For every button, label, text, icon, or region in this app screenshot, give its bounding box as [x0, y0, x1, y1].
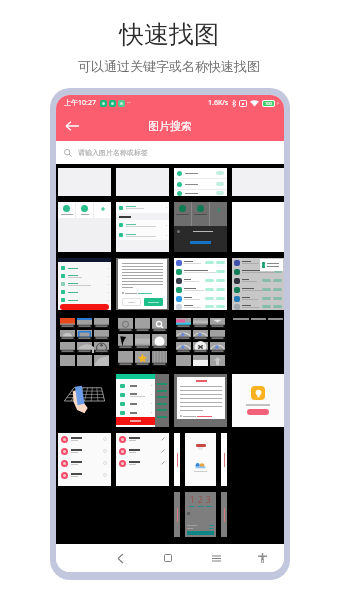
button[interactable] [116, 433, 169, 486]
staticText: 可以通过关键字或名称快速找图 [78, 58, 260, 74]
staticText: ·· [127, 98, 131, 108]
button[interactable]: Assistant [240, 544, 284, 572]
button[interactable] [232, 258, 284, 310]
button[interactable] [174, 258, 227, 310]
staticText: ⚡ [276, 100, 280, 106]
button[interactable] [174, 316, 227, 368]
staticText: 1.6K/s [208, 98, 229, 108]
button[interactable] [58, 374, 111, 427]
staticText: 2 [198, 494, 203, 505]
button[interactable] [58, 316, 111, 368]
button[interactable] [116, 316, 169, 368]
button[interactable] [232, 316, 284, 368]
staticText: 100 [265, 101, 272, 106]
button[interactable] [174, 374, 227, 427]
button[interactable] [116, 202, 169, 252]
staticText: 请输入图片名称或标签 [78, 148, 148, 157]
staticText: 快速找图 [119, 19, 219, 50]
button[interactable]: Back [61, 115, 83, 137]
staticText: 图片搜索 [148, 119, 192, 133]
button[interactable] [174, 202, 227, 252]
button[interactable] [58, 433, 111, 486]
button[interactable] [116, 374, 169, 427]
button[interactable] [58, 202, 111, 252]
button[interactable] [232, 374, 284, 427]
button[interactable]: 1 [174, 492, 227, 537]
button[interactable]: Recents [192, 544, 240, 572]
button[interactable]: Home [144, 544, 192, 572]
staticText: 上午10:27 [64, 98, 96, 108]
button[interactable] [116, 258, 169, 310]
staticText: 3 [206, 494, 211, 505]
button[interactable] [174, 168, 227, 196]
button[interactable] [58, 258, 111, 310]
button[interactable]: Back [96, 544, 144, 572]
button[interactable] [174, 433, 227, 486]
staticText: 1 [190, 494, 195, 505]
